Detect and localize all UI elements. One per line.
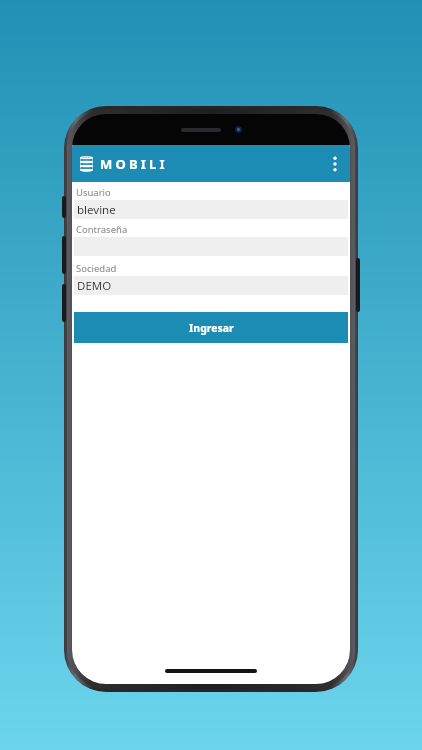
button[interactable]: More options xyxy=(320,145,350,182)
staticText: blevine xyxy=(77,202,116,218)
staticText: Contraseña xyxy=(76,223,128,236)
staticText: Usuario xyxy=(76,186,111,199)
button[interactable]: Ingresar xyxy=(74,312,348,343)
staticText: MOBILI xyxy=(100,155,168,173)
button[interactable]: blevine xyxy=(74,200,348,219)
button[interactable]: DEMO xyxy=(74,276,348,295)
staticText: Ingresar xyxy=(189,321,234,335)
staticText: Sociedad xyxy=(76,262,117,275)
staticText: DEMO xyxy=(77,278,112,294)
